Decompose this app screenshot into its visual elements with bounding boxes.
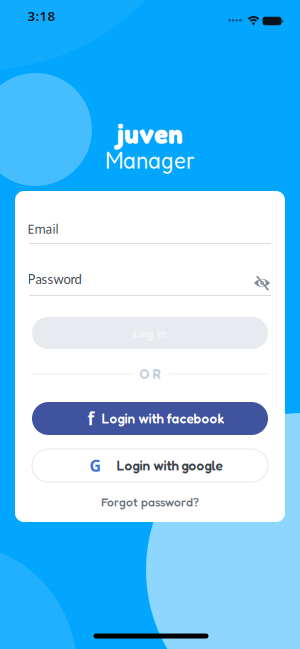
button[interactable]: G <box>32 449 268 482</box>
staticText: Log in <box>133 326 167 340</box>
staticText: Password <box>27 271 81 287</box>
staticText: O R <box>139 366 160 382</box>
button[interactable]: Show password <box>253 274 271 292</box>
button[interactable]: Forgot password? <box>15 494 285 510</box>
staticText: 3:18 <box>27 7 55 25</box>
staticText: Forgot password? <box>101 495 199 509</box>
staticText: Login with facebook <box>101 410 224 427</box>
button[interactable]: Password <box>27 263 271 296</box>
button[interactable]: f <box>32 402 268 435</box>
staticText: Login with google <box>116 457 222 474</box>
staticText: f <box>87 407 94 430</box>
staticText: G <box>89 455 101 476</box>
staticText: Manager <box>105 144 195 174</box>
button[interactable]: Log in <box>32 317 268 349</box>
button[interactable]: Email <box>27 213 271 244</box>
staticText: Email <box>27 221 58 237</box>
staticText: juven <box>117 117 183 150</box>
